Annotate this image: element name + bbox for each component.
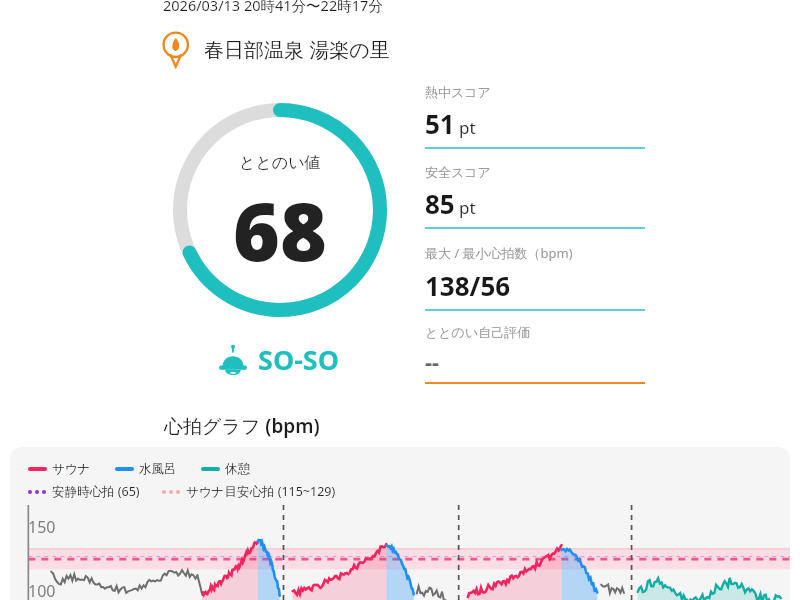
button[interactable]: サウナ目安心拍 (115~129) [162,483,336,500]
button[interactable]: 最大 / 最小心拍数（bpm) [425,244,645,311]
staticText: サウナ [52,461,91,477]
staticText: 最大 / 最小心拍数（bpm) [425,244,573,262]
staticText: 125 [28,548,56,570]
button[interactable]: 休憩 [201,461,250,477]
staticText: 心拍グラフ (bpm) [164,413,320,439]
button[interactable]: 安全スコア [425,164,645,229]
button[interactable]: 熱中スコア [425,84,645,149]
staticText: -- [425,346,440,376]
staticText: 安静時心拍 (65) [52,483,140,500]
staticText: 春日部温泉 湯楽の里 [204,36,390,63]
staticText: SO-SO [258,341,340,378]
button[interactable]: So-so rating [216,341,340,378]
staticText: 150 [28,516,56,538]
staticText: サウナ目安心拍 (115~129) [186,483,336,500]
button[interactable]: Onsen location [156,28,390,70]
button[interactable]: 水風呂 [115,461,177,477]
other: Onsen location [156,28,198,70]
staticText: pt [459,116,476,139]
staticText: ととのい自己評価 [425,324,531,340]
button[interactable]: サウナ [28,461,91,477]
staticText: 休憩 [225,461,250,477]
staticText: 100 [28,580,56,600]
staticText: 安全スコア [425,164,491,180]
staticText: 熱中スコア [425,84,491,100]
staticText: ととのい値 [239,153,321,173]
staticText: 水風呂 [139,461,177,477]
staticText: pt [459,196,476,219]
staticText: 68 [233,175,327,284]
staticText: 138/56 [425,268,511,303]
button[interactable]: ととのい自己評価 [425,324,645,384]
other: So-so rating [216,343,250,377]
staticText: 51 [425,106,455,141]
staticText: 85 [425,186,455,221]
staticText: 2026/03/13 20時41分〜22時17分 [163,0,383,15]
button[interactable]: 安静時心拍 (65) [28,483,140,500]
